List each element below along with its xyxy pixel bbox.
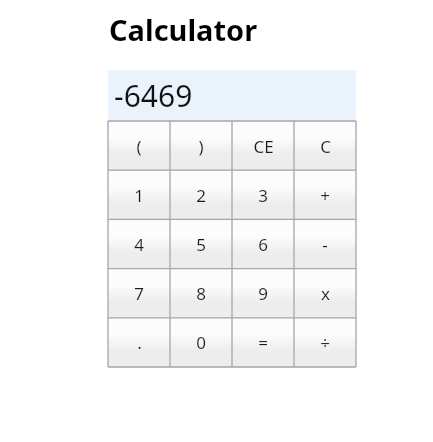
staticText: ( [136, 135, 142, 158]
staticText: 9 [258, 282, 268, 305]
button[interactable]: 5 [170, 220, 232, 269]
button[interactable]: 7 [108, 269, 170, 318]
button[interactable]: 4 [108, 220, 170, 269]
staticText: -6469 [114, 75, 193, 116]
button[interactable]: 3 [232, 171, 294, 220]
staticText: ) [198, 135, 204, 158]
staticText: CE [253, 135, 274, 158]
staticText: 4 [134, 233, 144, 256]
button[interactable]: - [294, 220, 356, 269]
button[interactable]: 1 [108, 171, 170, 220]
button[interactable]: CE [232, 121, 294, 171]
staticText: C [320, 135, 331, 158]
button[interactable]: ( [108, 121, 170, 171]
staticText: 6 [258, 233, 268, 256]
button[interactable]: -6469 [108, 70, 356, 121]
staticText: 0 [196, 331, 206, 354]
button[interactable]: 8 [170, 269, 232, 318]
staticText: 8 [196, 282, 206, 305]
staticText: 5 [196, 233, 206, 256]
button[interactable]: ÷ [294, 318, 356, 367]
button[interactable]: . [108, 318, 170, 367]
button[interactable]: 9 [232, 269, 294, 318]
staticText: x [321, 282, 330, 305]
staticText: 2 [196, 184, 206, 207]
button[interactable]: + [294, 171, 356, 220]
button[interactable]: = [232, 318, 294, 367]
staticText: + [320, 184, 330, 207]
staticText: 1 [134, 184, 144, 207]
button[interactable]: 6 [232, 220, 294, 269]
button[interactable]: x [294, 269, 356, 318]
staticText: 7 [134, 282, 144, 305]
staticText: = [258, 331, 268, 354]
staticText: Calculator [109, 10, 258, 48]
button[interactable]: ) [170, 121, 232, 171]
staticText: . [137, 331, 142, 354]
staticText: ÷ [320, 331, 330, 354]
staticText: - [322, 233, 328, 256]
button[interactable]: C [294, 121, 356, 171]
button[interactable]: 2 [170, 171, 232, 220]
staticText: 3 [258, 184, 268, 207]
button[interactable]: 0 [170, 318, 232, 367]
